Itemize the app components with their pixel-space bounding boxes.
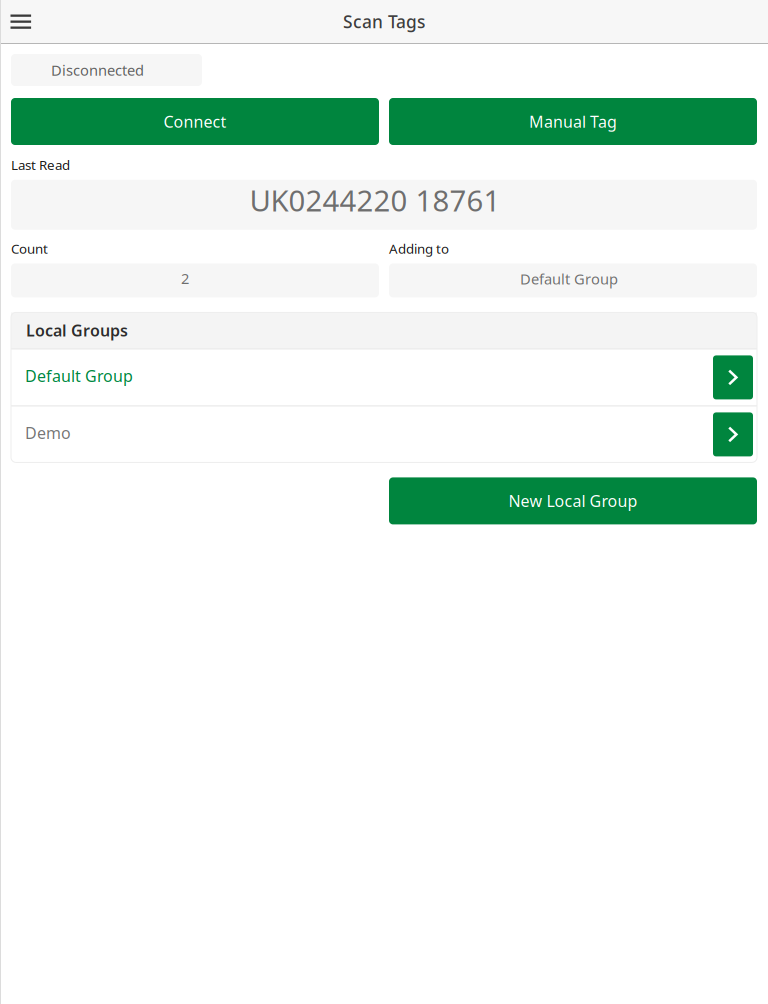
staticText: Default Group: [520, 269, 618, 289]
staticText: Demo: [25, 422, 71, 443]
staticText: Scan Tags: [343, 10, 425, 33]
button[interactable]: Connect: [11, 98, 379, 145]
staticText: New Local Group: [508, 490, 637, 511]
staticText: Adding to: [389, 240, 449, 257]
staticText: Connect: [163, 111, 226, 132]
button[interactable]: Menu: [0, 0, 42, 43]
button[interactable]: Demo: [11, 406, 757, 462]
staticText: Manual Tag: [529, 111, 617, 132]
button[interactable]: Default Group: [11, 349, 757, 405]
staticText: UK0244220 18761: [249, 181, 500, 220]
button[interactable]: New Local Group: [389, 477, 757, 524]
staticText: Count: [11, 240, 48, 257]
staticText: Disconnected: [51, 60, 144, 80]
staticText: Local Groups: [26, 320, 128, 341]
staticText: 2: [181, 269, 189, 288]
button[interactable]: Manual Tag: [389, 98, 757, 145]
staticText: Default Group: [25, 365, 133, 386]
staticText: Last Read: [11, 156, 70, 174]
